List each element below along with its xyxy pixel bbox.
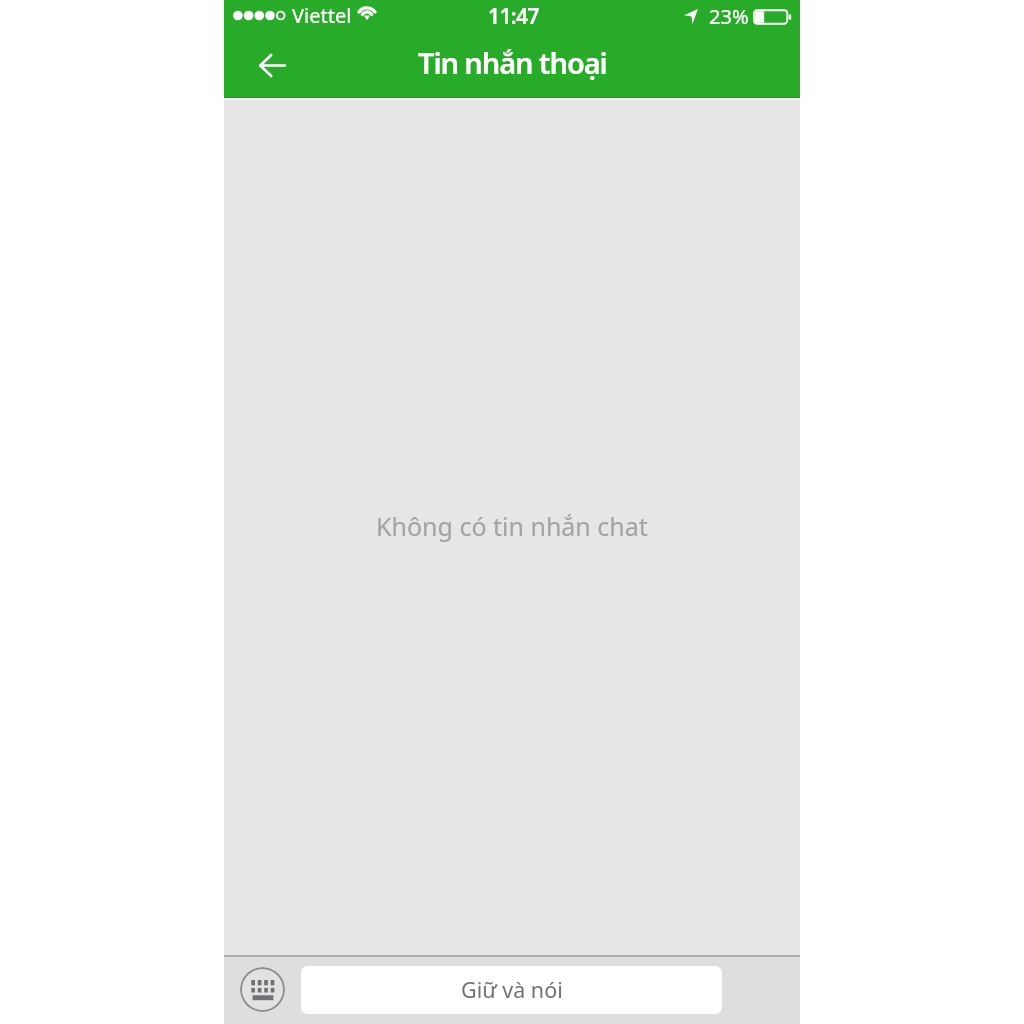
staticText: 11:47	[488, 2, 539, 31]
staticText: 23%	[709, 3, 749, 30]
staticText: Tin nhắn thoại	[418, 43, 607, 82]
staticText: Không có tin nhắn chat	[376, 509, 648, 543]
staticText: Giữ và nói	[461, 975, 563, 1004]
button[interactable]: Keyboard	[240, 967, 285, 1012]
button[interactable]: Back	[249, 43, 295, 87]
staticText: Viettel	[292, 2, 352, 29]
button[interactable]: Giữ và nói	[301, 966, 722, 1014]
